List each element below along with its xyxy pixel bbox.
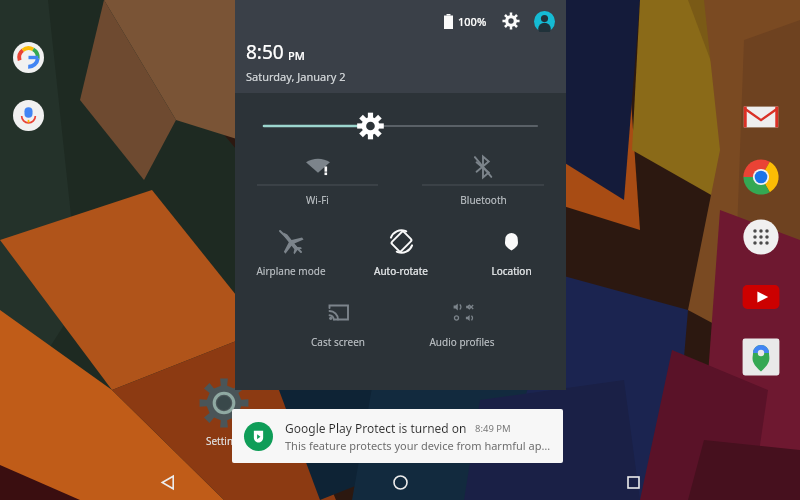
button[interactable]: Home bbox=[376, 464, 424, 500]
button[interactable]: Airplane mode bbox=[235, 220, 346, 286]
button[interactable]: Apps bbox=[741, 217, 781, 257]
staticText: Location bbox=[491, 264, 532, 278]
button[interactable]: Brightness bbox=[235, 93, 566, 139]
button[interactable]: Cast screen bbox=[276, 291, 400, 357]
button[interactable]: Wi-Fi bbox=[257, 149, 378, 217]
button[interactable]: Gmail bbox=[741, 97, 781, 137]
staticText: Google Play Protect is turned on bbox=[285, 420, 467, 436]
button[interactable]: Settings bbox=[196, 375, 252, 431]
button[interactable]: Bluetooth bbox=[422, 149, 544, 217]
staticText: This feature protects your device from h… bbox=[285, 438, 551, 453]
staticText: PM bbox=[288, 48, 305, 63]
button[interactable]: Google Play Protect is turned on bbox=[232, 409, 563, 463]
staticText: 100% bbox=[458, 14, 487, 29]
button[interactable]: Maps bbox=[741, 337, 781, 377]
staticText: Saturday, January 2 bbox=[246, 69, 346, 84]
button[interactable]: Auto-rotate bbox=[346, 220, 456, 286]
button[interactable]: Audio profiles bbox=[400, 291, 524, 357]
button[interactable]: Voice Search bbox=[13, 100, 44, 131]
button[interactable]: Recents bbox=[609, 464, 657, 500]
button[interactable]: YouTube bbox=[741, 277, 781, 317]
button[interactable]: Settings bbox=[501, 11, 521, 31]
staticText: Bluetooth bbox=[460, 193, 507, 207]
staticText: Audio profiles bbox=[429, 335, 495, 349]
staticText: Wi-Fi bbox=[306, 193, 329, 207]
staticText: Settings bbox=[190, 434, 260, 448]
button[interactable]: Back bbox=[143, 464, 191, 500]
staticText: Cast screen bbox=[311, 335, 365, 349]
staticText: Auto-rotate bbox=[374, 264, 428, 278]
staticText: 8:50 bbox=[246, 39, 284, 65]
button[interactable]: User bbox=[533, 10, 555, 32]
staticText: 8:49 PM bbox=[475, 422, 511, 435]
staticText: Airplane mode bbox=[256, 264, 326, 278]
button[interactable]: Google Search bbox=[13, 42, 44, 73]
button[interactable]: Location bbox=[456, 220, 566, 286]
button[interactable]: Chrome bbox=[741, 157, 781, 197]
